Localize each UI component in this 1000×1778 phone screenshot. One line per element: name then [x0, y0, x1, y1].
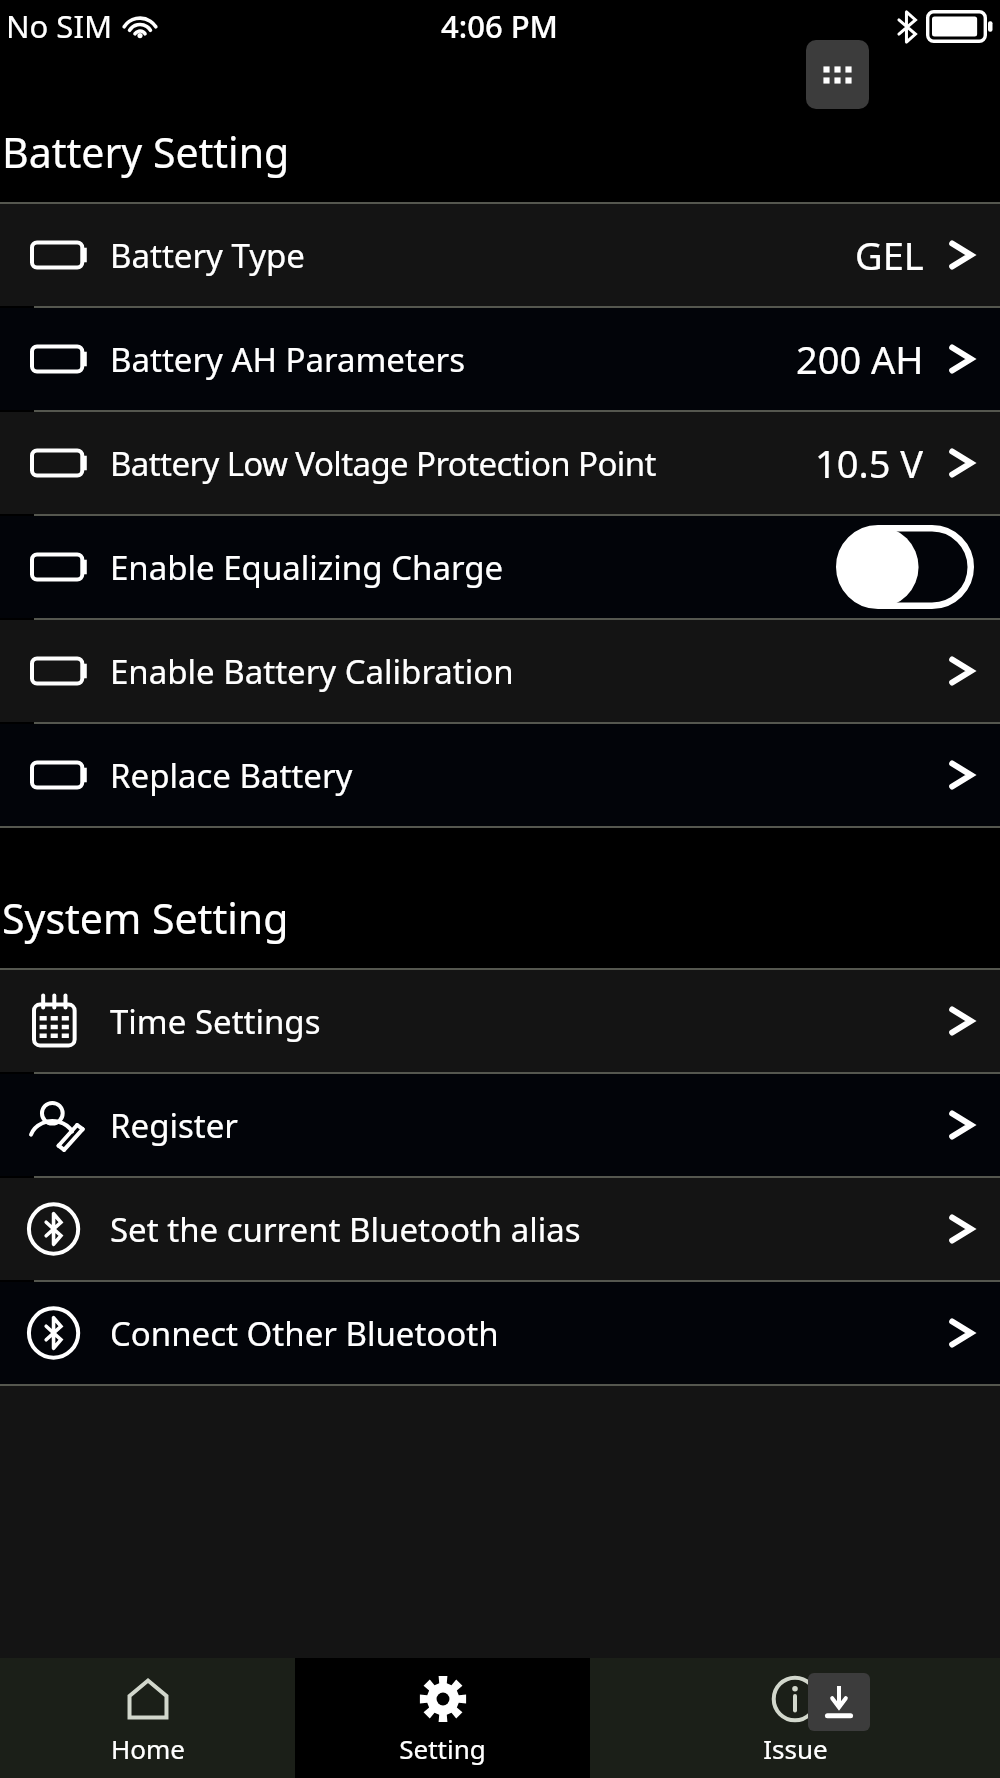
button[interactable]: Battery AH Parameters — [0, 308, 1000, 410]
staticText: 4:06 PM — [441, 5, 559, 47]
staticText: 10.5 V — [815, 437, 924, 489]
other: Open Battery AH Parameters — [948, 335, 974, 383]
staticText: Home — [111, 1731, 185, 1766]
other: Open Time Settings — [948, 997, 974, 1045]
staticText: Battery Setting — [2, 124, 290, 180]
other: Open Enable Battery Calibration — [948, 647, 974, 695]
button[interactable]: Register — [0, 1074, 1000, 1176]
staticText: Setting — [399, 1731, 486, 1766]
button[interactable]: Set the current Bluetooth alias — [0, 1178, 1000, 1280]
other: Open Replace Battery — [948, 751, 974, 799]
button[interactable]: Replace Battery — [0, 724, 1000, 826]
staticText: Enable Equalizing Charge — [110, 545, 504, 590]
staticText: Connect Other Bluetooth — [110, 1311, 499, 1356]
other: Open Register — [948, 1101, 974, 1149]
button[interactable]: Issue — [590, 1658, 1000, 1778]
other: Open Battery Low Voltage Protection Poin… — [948, 439, 974, 487]
other: Open Connect Other Bluetooth — [948, 1309, 974, 1357]
staticText: Enable Battery Calibration — [110, 649, 514, 694]
button[interactable]: Setting — [295, 1658, 590, 1778]
button[interactable]: Connect Other Bluetooth — [0, 1282, 1000, 1384]
staticText: Set the current Bluetooth alias — [110, 1207, 581, 1252]
other: Open Set the current Bluetooth alias — [948, 1205, 974, 1253]
staticText: System Setting — [2, 890, 289, 946]
button[interactable]: Battery Low Voltage Protection Point — [0, 412, 1000, 514]
staticText: Battery AH Parameters — [110, 337, 465, 382]
staticText: GEL — [855, 229, 924, 281]
button[interactable]: Battery Type — [0, 204, 1000, 306]
button[interactable]: Time Settings — [0, 970, 1000, 1072]
other: Open Battery Type — [948, 231, 974, 279]
staticText: No SIM — [6, 5, 113, 47]
staticText: Battery Low Voltage Protection Point — [110, 441, 656, 486]
staticText: Replace Battery — [110, 753, 353, 798]
button[interactable]: Toggle Enable Equalizing Charge — [836, 525, 974, 609]
staticText: Register — [110, 1103, 238, 1148]
staticText: 200 AH — [796, 333, 924, 385]
button[interactable]: App grid — [806, 40, 869, 109]
button[interactable]: Enable Equalizing Charge — [0, 516, 1000, 618]
button[interactable]: Home — [0, 1658, 295, 1778]
staticText: Issue — [763, 1731, 828, 1766]
staticText: Time Settings — [110, 999, 321, 1044]
button[interactable]: Download — [808, 1673, 870, 1731]
button[interactable]: Enable Battery Calibration — [0, 620, 1000, 722]
staticText: Battery Type — [110, 233, 305, 278]
